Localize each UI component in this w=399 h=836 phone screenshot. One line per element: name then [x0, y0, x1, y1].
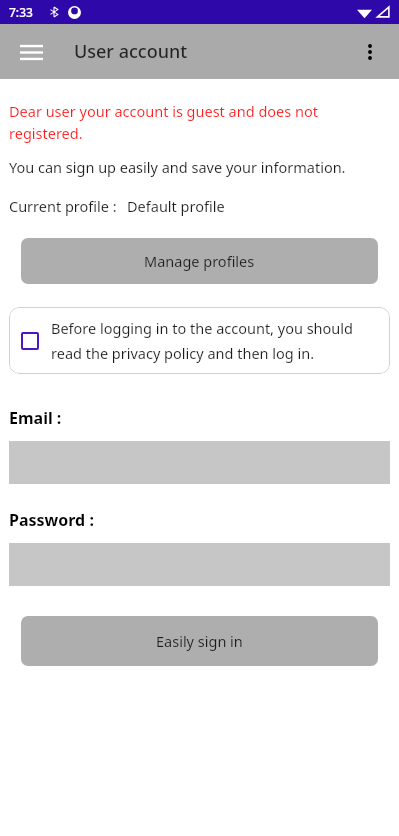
staticText: User account: [74, 39, 188, 64]
button[interactable]: More options: [349, 31, 391, 73]
button[interactable]: Manage profiles: [21, 238, 378, 284]
staticText: Before logging in to the account, you sh…: [51, 318, 382, 363]
staticText: Easily sign in: [156, 631, 243, 651]
button[interactable]: Accept privacy policy: [9, 307, 390, 374]
staticText: Password :: [9, 509, 94, 531]
button[interactable]: Easily sign in: [21, 616, 378, 666]
button[interactable]: Open navigation menu: [11, 32, 51, 72]
staticText: Manage profiles: [144, 251, 255, 271]
staticText: 7:33: [9, 4, 33, 20]
other: Accept privacy policy: [21, 332, 39, 350]
staticText: Dear user your account is guest and does…: [9, 101, 359, 143]
staticText: Email :: [9, 407, 62, 429]
staticText: You can sign up easily and save your inf…: [9, 157, 389, 177]
staticText: Current profile :: [9, 196, 117, 216]
staticText: Default profile: [127, 196, 225, 216]
